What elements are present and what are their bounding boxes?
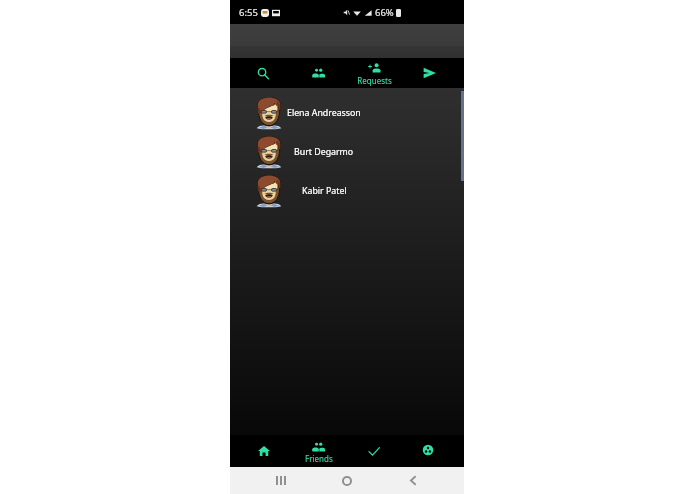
staticText: Kabir Patel xyxy=(302,185,347,197)
staticText: 66% xyxy=(375,6,394,19)
button[interactable]: Home xyxy=(236,435,291,467)
button[interactable]: Groups xyxy=(402,435,458,467)
staticText: Elena Andreasson xyxy=(287,107,361,119)
button[interactable]: Burt Degarmo xyxy=(230,131,464,170)
staticText: Friends xyxy=(305,453,333,464)
button[interactable]: Requests xyxy=(346,58,402,88)
button[interactable]: Recents xyxy=(248,467,314,494)
staticText: Burt Degarmo xyxy=(294,146,354,158)
button[interactable]: Friends xyxy=(291,435,346,467)
button[interactable]: Home xyxy=(314,467,380,494)
button[interactable]: Kabir Patel xyxy=(230,170,464,209)
button[interactable]: Friends xyxy=(291,58,346,88)
button[interactable]: Back xyxy=(380,467,446,494)
staticText: 6:55 xyxy=(239,6,258,19)
button[interactable]: Tasks xyxy=(346,435,402,467)
staticText: Requests xyxy=(357,75,392,86)
button[interactable]: Elena Andreasson xyxy=(230,92,464,131)
button[interactable]: Search xyxy=(236,58,291,88)
button[interactable]: Send xyxy=(402,58,458,88)
